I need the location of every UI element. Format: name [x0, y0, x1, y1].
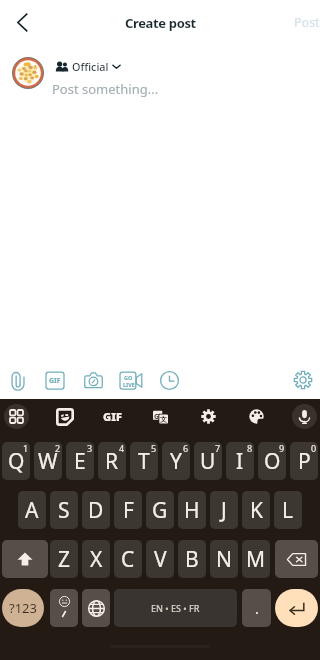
- staticText: ?123: [9, 599, 37, 617]
- button[interactable]: X: [82, 540, 110, 578]
- staticText: 6: [183, 442, 189, 454]
- button[interactable]: Camera: [79, 366, 107, 394]
- staticText: 4: [119, 442, 125, 454]
- button[interactable]: Backspace: [275, 540, 318, 578]
- staticText: P: [298, 447, 311, 476]
- button[interactable]: Settings: [289, 366, 317, 394]
- button[interactable]: Q: [2, 442, 30, 480]
- staticText: U: [200, 447, 216, 476]
- staticText: 3: [87, 442, 93, 454]
- button[interactable]: P: [290, 442, 318, 480]
- button[interactable]: Space: [114, 589, 237, 627]
- button[interactable]: W: [34, 442, 62, 480]
- staticText: 0: [311, 442, 317, 454]
- staticText: R: [105, 447, 119, 476]
- button[interactable]: Symbols: [2, 589, 44, 627]
- button[interactable]: Voice input: [292, 404, 317, 429]
- staticText: X: [90, 545, 103, 574]
- staticText: 5: [151, 442, 157, 454]
- button[interactable]: H: [178, 491, 206, 529]
- button[interactable]: L: [274, 491, 302, 529]
- staticText: J: [221, 496, 227, 525]
- staticText: Y: [170, 447, 182, 476]
- button[interactable]: Back: [4, 4, 40, 40]
- button[interactable]: J: [210, 491, 238, 529]
- button[interactable]: Stickers: [52, 404, 77, 429]
- staticText: O: [264, 447, 281, 476]
- button[interactable]: Enter: [275, 589, 318, 627]
- staticText: M: [246, 545, 266, 574]
- staticText: I: [236, 447, 244, 476]
- staticText: Q: [8, 447, 25, 476]
- button[interactable]: Translate: [148, 404, 173, 429]
- button[interactable]: C: [114, 540, 142, 578]
- staticText: H: [184, 496, 200, 525]
- button[interactable]: B: [178, 540, 206, 578]
- button[interactable]: Change language: [82, 589, 110, 627]
- button[interactable]: Attach file: [3, 366, 31, 394]
- button[interactable]: GIF: [41, 366, 69, 394]
- button[interactable]: Z: [50, 540, 78, 578]
- button[interactable]: T: [130, 442, 158, 480]
- staticText: N: [216, 545, 232, 574]
- staticText: V: [154, 545, 167, 574]
- button[interactable]: N: [210, 540, 238, 578]
- staticText: LIVE: [123, 381, 135, 388]
- staticText: A: [25, 496, 39, 525]
- staticText: T: [138, 447, 150, 476]
- staticText: 8: [247, 442, 253, 454]
- button[interactable]: G: [146, 491, 174, 529]
- button[interactable]: D: [82, 491, 110, 529]
- staticText: D: [88, 496, 104, 525]
- button[interactable]: Shift: [2, 540, 48, 578]
- button[interactable]: Period: [242, 589, 271, 627]
- button[interactable]: Y: [162, 442, 190, 480]
- button[interactable]: O: [258, 442, 286, 480]
- staticText: W: [38, 447, 58, 476]
- staticText: E: [74, 447, 86, 476]
- staticText: GIF: [49, 376, 61, 386]
- button[interactable]: Keyboard settings: [196, 404, 221, 429]
- staticText: S: [58, 496, 70, 525]
- button[interactable]: Emoji: [50, 589, 78, 627]
- staticText: K: [250, 496, 263, 525]
- staticText: Official: [72, 59, 109, 74]
- button[interactable]: R: [98, 442, 126, 480]
- button[interactable]: Theme: [244, 404, 269, 429]
- staticText: GIF: [103, 409, 122, 424]
- staticText: 2: [55, 442, 61, 454]
- button[interactable]: I: [226, 442, 254, 480]
- staticText: Post: [294, 14, 320, 31]
- button[interactable]: V: [146, 540, 174, 578]
- staticText: L: [282, 496, 294, 525]
- button[interactable]: E: [66, 442, 94, 480]
- staticText: 文: [160, 415, 167, 424]
- staticText: Create post: [125, 14, 196, 32]
- button[interactable]: Schedule: [155, 366, 183, 394]
- staticText: 1: [23, 442, 29, 454]
- button[interactable]: Post: [286, 4, 320, 40]
- staticText: Post something...: [52, 80, 159, 98]
- staticText: .: [255, 599, 259, 618]
- staticText: 9: [279, 442, 285, 454]
- staticText: B: [185, 545, 199, 574]
- staticText: EN • ES • FR: [151, 602, 200, 614]
- button[interactable]: Keyboard modes: [4, 404, 29, 429]
- staticText: F: [123, 496, 134, 525]
- staticText: GO: [124, 374, 133, 381]
- button[interactable]: A: [18, 491, 46, 529]
- button[interactable]: Official: [55, 59, 121, 74]
- staticText: C: [121, 545, 135, 574]
- staticText: G: [154, 412, 160, 422]
- button[interactable]: K: [242, 491, 270, 529]
- staticText: 7: [215, 442, 221, 454]
- button[interactable]: GIF keyboard: [100, 404, 125, 429]
- staticText: G: [152, 496, 168, 525]
- button[interactable]: U: [194, 442, 222, 480]
- button[interactable]: Go live: [117, 366, 145, 394]
- button[interactable]: S: [50, 491, 78, 529]
- staticText: Z: [58, 545, 71, 574]
- button[interactable]: F: [114, 491, 142, 529]
- button[interactable]: M: [242, 540, 270, 578]
